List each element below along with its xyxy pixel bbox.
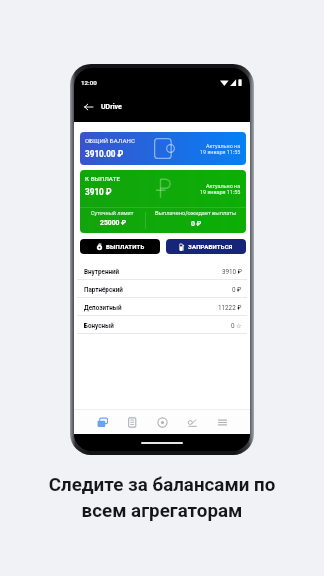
staticText: 12:00 [81, 79, 97, 86]
staticText: ЗАПРАВИТЬСЯ [188, 243, 233, 250]
button[interactable]: ОБЩИЙ БАЛАНС [80, 132, 246, 165]
staticText: UDrive [101, 103, 122, 111]
staticText: 3910 ₽ [222, 268, 242, 275]
button[interactable]: Депозитный [74, 298, 250, 316]
staticText: 0 ☆ [231, 322, 242, 329]
button[interactable]: ЗАПРАВИТЬСЯ [166, 239, 246, 254]
staticText: 3910 ₽ [85, 187, 112, 197]
staticText: Следите за балансами по всем агрегаторам [0, 474, 324, 521]
staticText: Суточный лимит [91, 210, 134, 216]
staticText: Актуально на [206, 183, 241, 189]
button[interactable]: Menu [207, 410, 237, 434]
button[interactable]: Orders [117, 410, 147, 434]
staticText: К ВЫПЛАТЕ [85, 175, 120, 182]
staticText: Бонусный [84, 322, 114, 329]
button[interactable]: Внутренний [74, 262, 250, 280]
button[interactable]: Balances [87, 410, 117, 434]
staticText: 11222 ₽ [218, 304, 242, 311]
staticText: Депозитный [84, 304, 122, 311]
staticText: Выплачено/ожидает выплаты [155, 210, 237, 217]
button[interactable]: Бонусный [74, 316, 250, 334]
staticText: 3910.00 ₽ [85, 149, 124, 159]
button[interactable]: К ВЫПЛАТЕ [80, 170, 246, 233]
button[interactable]: Trips [177, 410, 207, 434]
staticText: ВЫПЛАТИТЬ [106, 243, 145, 250]
staticText: Актуально на [206, 143, 241, 149]
button[interactable]: ВЫПЛАТИТЬ [80, 239, 160, 254]
staticText: 0 ₽ [232, 286, 242, 293]
staticText: 19 января 11:55 [200, 189, 241, 195]
staticText: Внутренний [84, 268, 120, 275]
staticText: 19 января 11:55 [200, 149, 241, 155]
staticText: ОБЩИЙ БАЛАНС [85, 137, 136, 144]
staticText: Партнёрский [84, 286, 123, 293]
button[interactable]: Партнёрский [74, 280, 250, 298]
staticText: 0 ₽ [191, 220, 202, 228]
button[interactable]: Sync [147, 410, 177, 434]
staticText: 25000 ₽ [100, 219, 126, 227]
button[interactable]: Back [82, 100, 95, 113]
